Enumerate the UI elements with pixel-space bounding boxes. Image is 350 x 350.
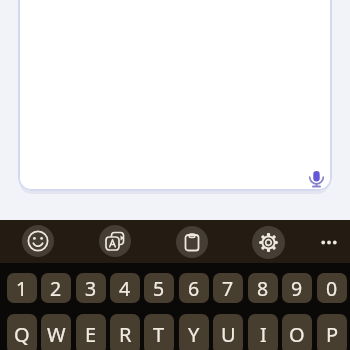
staticText: I xyxy=(260,321,267,348)
staticText: U xyxy=(221,321,236,348)
button[interactable]: Q xyxy=(7,314,37,350)
staticText: 3 xyxy=(85,275,97,302)
staticText: O xyxy=(289,321,305,348)
button[interactable]: 1 xyxy=(7,273,37,303)
button[interactable] xyxy=(320,232,342,252)
staticText: 9 xyxy=(291,275,303,302)
button[interactable]: P xyxy=(317,314,347,350)
button[interactable]: R xyxy=(110,314,140,350)
staticText: 1 xyxy=(16,275,28,302)
button[interactable] xyxy=(252,226,285,259)
button[interactable]: Y xyxy=(179,314,209,350)
staticText: Q xyxy=(14,321,30,348)
button[interactable]: 4 xyxy=(110,273,140,303)
button[interactable] xyxy=(22,225,54,257)
staticText: 7 xyxy=(222,275,234,302)
button[interactable]: I xyxy=(248,314,278,350)
staticText: 2 xyxy=(50,275,62,302)
button[interactable]: E xyxy=(76,314,106,350)
button[interactable] xyxy=(302,164,331,193)
button[interactable] xyxy=(99,225,131,257)
button[interactable]: 0 xyxy=(317,273,347,303)
staticText: Y xyxy=(188,321,200,348)
button[interactable]: 9 xyxy=(282,273,312,303)
button[interactable] xyxy=(18,0,332,191)
staticText: R xyxy=(119,321,132,348)
staticText: 0 xyxy=(326,275,338,302)
button[interactable] xyxy=(176,226,208,258)
button[interactable]: 2 xyxy=(41,273,71,303)
staticText: P xyxy=(326,321,339,348)
button[interactable]: T xyxy=(144,314,174,350)
button[interactable]: 6 xyxy=(179,273,209,303)
button[interactable]: 3 xyxy=(76,273,106,303)
button[interactable]: 7 xyxy=(213,273,243,303)
staticText: 5 xyxy=(153,275,165,302)
button[interactable]: W xyxy=(41,314,71,350)
staticText: 8 xyxy=(257,275,269,302)
button[interactable]: 5 xyxy=(144,273,174,303)
button[interactable]: U xyxy=(213,314,243,350)
staticText: T xyxy=(153,321,165,348)
staticText: 6 xyxy=(188,275,200,302)
button[interactable]: O xyxy=(282,314,312,350)
staticText: W xyxy=(47,321,66,348)
staticText: E xyxy=(85,321,97,348)
button[interactable]: 8 xyxy=(248,273,278,303)
staticText: 4 xyxy=(119,275,131,302)
